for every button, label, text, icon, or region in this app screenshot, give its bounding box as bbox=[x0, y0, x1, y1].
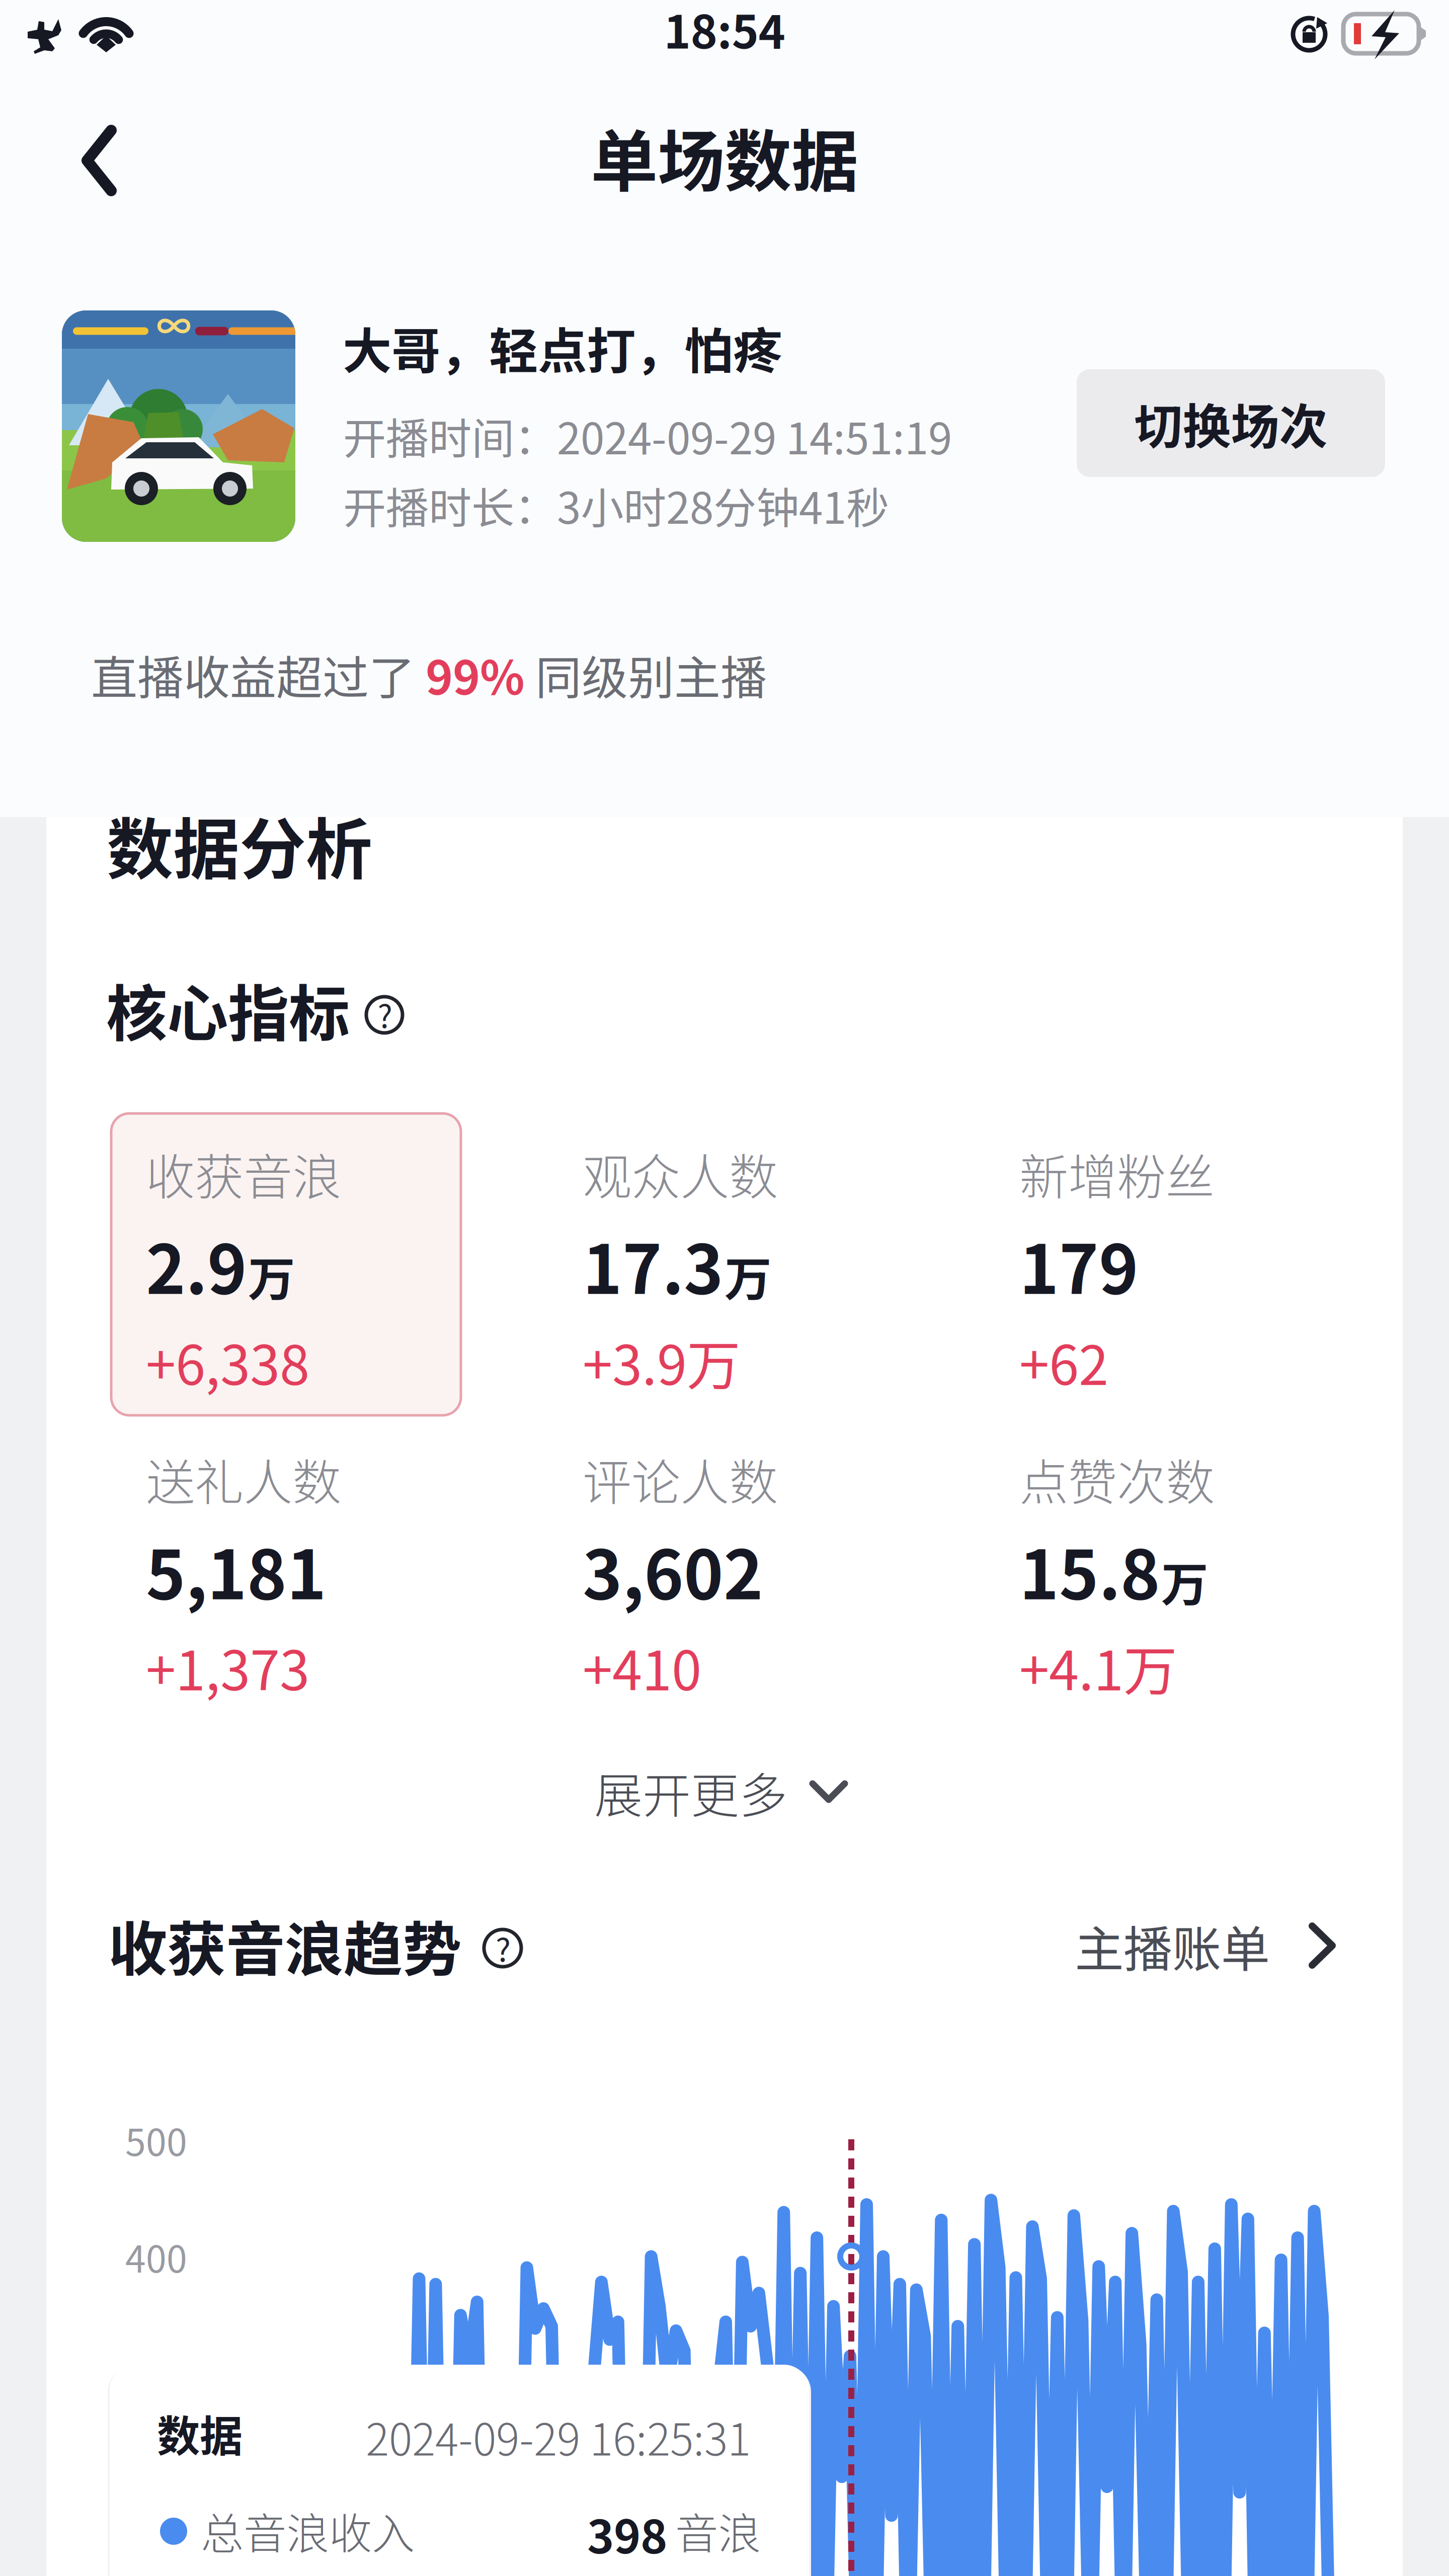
staticText: 500 bbox=[125, 2113, 187, 2167]
staticText: ? bbox=[378, 992, 392, 1037]
button[interactable]: 主播账单 bbox=[1075, 1908, 1366, 1983]
staticText: 开播时间：2024-09-29 14:51:19 bbox=[343, 405, 952, 467]
staticText: 5,181 bbox=[146, 1521, 327, 1619]
staticText: 收获音浪 bbox=[146, 1138, 341, 1209]
staticText: 17.3 bbox=[583, 1216, 723, 1313]
staticText: 2.9 bbox=[146, 1216, 247, 1313]
staticText: 数据 bbox=[157, 2402, 243, 2464]
staticText: +62 bbox=[1019, 1323, 1108, 1400]
staticText: 2024-09-29 16:25:31 bbox=[366, 2405, 751, 2468]
staticText: +6,338 bbox=[146, 1323, 309, 1400]
staticText: 核心指标 bbox=[106, 965, 350, 1053]
staticText: 15.8 bbox=[1019, 1521, 1160, 1619]
staticText: 同级别主播 bbox=[525, 641, 767, 708]
staticText: 点赞次数 bbox=[1019, 1443, 1215, 1514]
staticText: 万 bbox=[725, 1242, 771, 1310]
staticText: 万 bbox=[1161, 1547, 1208, 1615]
staticText: 送礼人数 bbox=[146, 1443, 341, 1514]
staticText: 新增粉丝 bbox=[1019, 1138, 1215, 1209]
button[interactable]: 展开更多 bbox=[530, 1747, 912, 1837]
staticText: 单场数据 bbox=[591, 108, 858, 205]
staticText: 开播时长：3小时28分钟41秒 bbox=[343, 474, 889, 536]
staticText: 万 bbox=[248, 1242, 295, 1310]
staticText: 3,602 bbox=[583, 1521, 763, 1619]
staticText: 400 bbox=[125, 2230, 187, 2283]
button[interactable]: 切换场次 bbox=[1077, 369, 1385, 477]
staticText: 主播账单 bbox=[1075, 1910, 1270, 1981]
staticText: 收获音浪趋势 bbox=[108, 1902, 461, 1988]
staticText: +3.9万 bbox=[583, 1323, 741, 1400]
staticText: 观众人数 bbox=[583, 1138, 778, 1209]
staticText: ? bbox=[496, 1925, 511, 1971]
staticText: 切换场次 bbox=[1134, 388, 1327, 458]
staticText: 直播收益超过了 bbox=[91, 641, 426, 708]
staticText: 音浪 bbox=[675, 2500, 761, 2562]
staticText: 数据分析 bbox=[107, 796, 372, 893]
staticText: 总音浪收入 bbox=[201, 2500, 415, 2562]
staticText: +410 bbox=[583, 1628, 701, 1706]
staticText: 大哥，轻点打，怕疼 bbox=[343, 312, 782, 383]
staticText: 18:54 bbox=[664, 0, 785, 62]
staticText: +1,373 bbox=[146, 1628, 309, 1706]
staticText: ∞ bbox=[156, 299, 191, 349]
staticText: +4.1万 bbox=[1019, 1628, 1177, 1706]
button[interactable]: Back bbox=[0, 94, 167, 227]
staticText: 评论人数 bbox=[583, 1443, 778, 1514]
staticText: 展开更多 bbox=[594, 1757, 787, 1827]
staticText: 398 bbox=[587, 2501, 667, 2567]
staticText: 179 bbox=[1019, 1216, 1139, 1313]
staticText: 99% bbox=[426, 641, 525, 708]
